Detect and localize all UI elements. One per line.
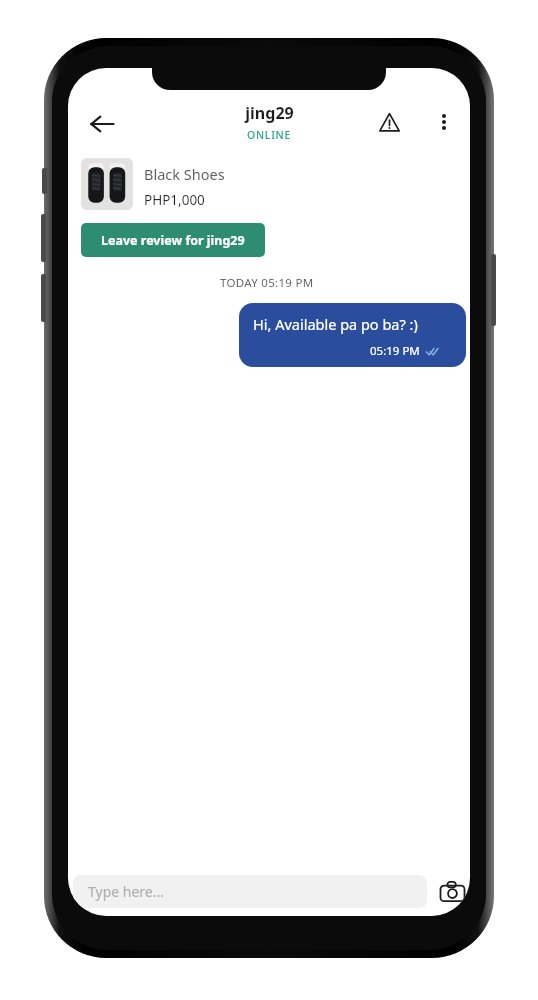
staticText: Black Shoes bbox=[144, 164, 225, 184]
button[interactable]: Back bbox=[78, 100, 126, 148]
staticText: jing29 bbox=[245, 102, 294, 124]
staticText: PHP1,000 bbox=[144, 191, 205, 209]
staticText: ONLINE bbox=[247, 128, 291, 142]
staticText: TODAY 05:19 PM bbox=[220, 275, 314, 291]
staticText: Leave review for jing29 bbox=[101, 232, 245, 249]
staticText: 05:19 PM bbox=[370, 343, 420, 359]
button[interactable]: More options bbox=[422, 100, 466, 144]
button[interactable]: Leave review for jing29 bbox=[81, 223, 265, 257]
button[interactable]: Hi, Available pa po ba? :) bbox=[239, 303, 466, 367]
button[interactable] bbox=[81, 158, 133, 210]
button[interactable]: Type here... bbox=[73, 875, 427, 908]
staticText: Type here... bbox=[88, 882, 164, 901]
button[interactable]: Camera bbox=[430, 869, 470, 913]
staticText: Hi, Available pa po ba? :) bbox=[253, 314, 418, 334]
button[interactable]: Report bbox=[367, 100, 411, 144]
